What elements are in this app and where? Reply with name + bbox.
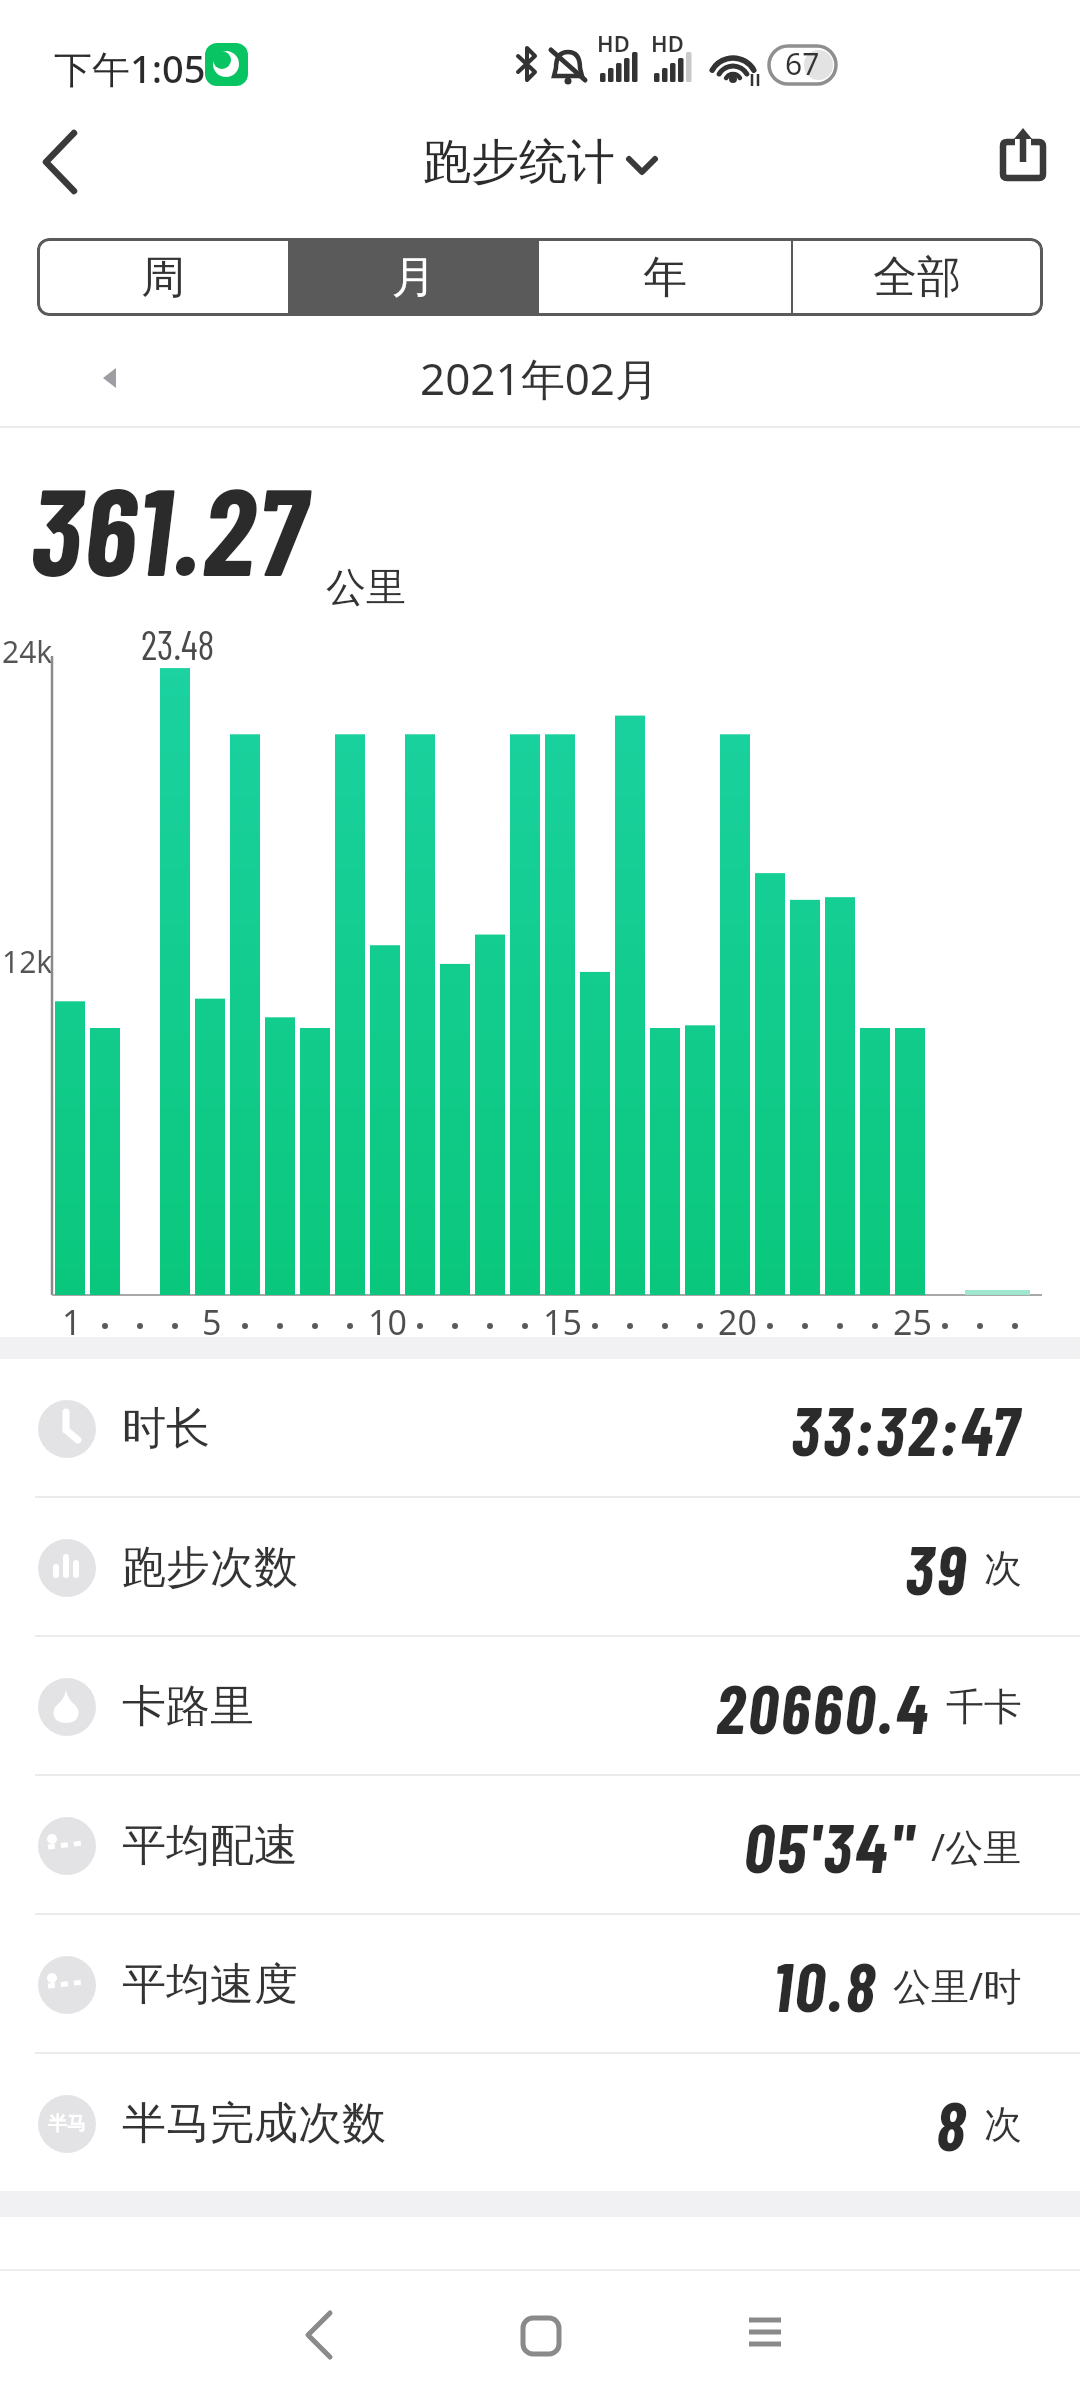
staticText: 平均配速 bbox=[122, 1818, 298, 1873]
staticText: 10.8 bbox=[773, 1944, 878, 2026]
button[interactable] bbox=[996, 126, 1056, 186]
button[interactable] bbox=[90, 355, 136, 401]
staticText: 24k bbox=[2, 631, 53, 672]
staticText: 半马 bbox=[48, 2112, 86, 2136]
staticText: 25 bbox=[893, 1299, 932, 1345]
button[interactable]: 全部 bbox=[791, 238, 1043, 316]
staticText: 跑步次数 bbox=[122, 1540, 298, 1595]
button[interactable]: 周 bbox=[37, 238, 288, 316]
staticText: HD bbox=[651, 28, 684, 58]
staticText: 2021年02月 bbox=[420, 348, 660, 408]
button[interactable]: 年 bbox=[539, 238, 791, 316]
staticText: 平均速度 bbox=[122, 1957, 298, 2012]
staticText: 12k bbox=[2, 941, 53, 982]
button[interactable] bbox=[736, 2305, 796, 2365]
staticText: 39 bbox=[905, 1527, 969, 1609]
staticText: 千卡 bbox=[946, 1683, 1022, 1731]
staticText: 年 bbox=[643, 250, 687, 305]
staticText: 公里/时 bbox=[893, 1959, 1022, 2011]
staticText: 1 bbox=[62, 1299, 82, 1345]
button[interactable] bbox=[512, 2305, 572, 2365]
staticText: 15 bbox=[543, 1299, 582, 1345]
staticText: 10 bbox=[368, 1299, 407, 1345]
staticText: 半马完成次数 bbox=[122, 2096, 386, 2151]
staticText: 67 bbox=[785, 43, 820, 84]
staticText: 33:32:47 bbox=[791, 1388, 1022, 1470]
staticText: 8 bbox=[936, 2083, 969, 2165]
button[interactable] bbox=[28, 130, 92, 194]
staticText: 全部 bbox=[873, 250, 961, 305]
staticText: 时长 bbox=[122, 1401, 210, 1456]
button[interactable] bbox=[290, 2305, 350, 2365]
staticText: 公里 bbox=[326, 562, 406, 612]
staticText: 月 bbox=[392, 250, 436, 305]
staticText: 5 bbox=[202, 1299, 222, 1345]
staticText: 周 bbox=[141, 250, 185, 305]
staticText: 卡路里 bbox=[122, 1679, 254, 1734]
staticText: 361.27 bbox=[30, 454, 308, 600]
button[interactable]: 跑步统计 bbox=[423, 132, 615, 192]
staticText: 05'34" bbox=[744, 1805, 916, 1887]
staticText: 次 bbox=[984, 1544, 1022, 1592]
staticText: 下午1:05 bbox=[54, 42, 206, 94]
staticText: 23.48 bbox=[141, 620, 215, 668]
staticText: 次 bbox=[984, 2100, 1022, 2148]
staticText: 20660.4 bbox=[716, 1666, 931, 1748]
staticText: 20 bbox=[718, 1299, 757, 1345]
button[interactable]: 月 bbox=[288, 238, 539, 316]
staticText: /公里 bbox=[931, 1820, 1022, 1872]
staticText: HD bbox=[597, 28, 630, 58]
